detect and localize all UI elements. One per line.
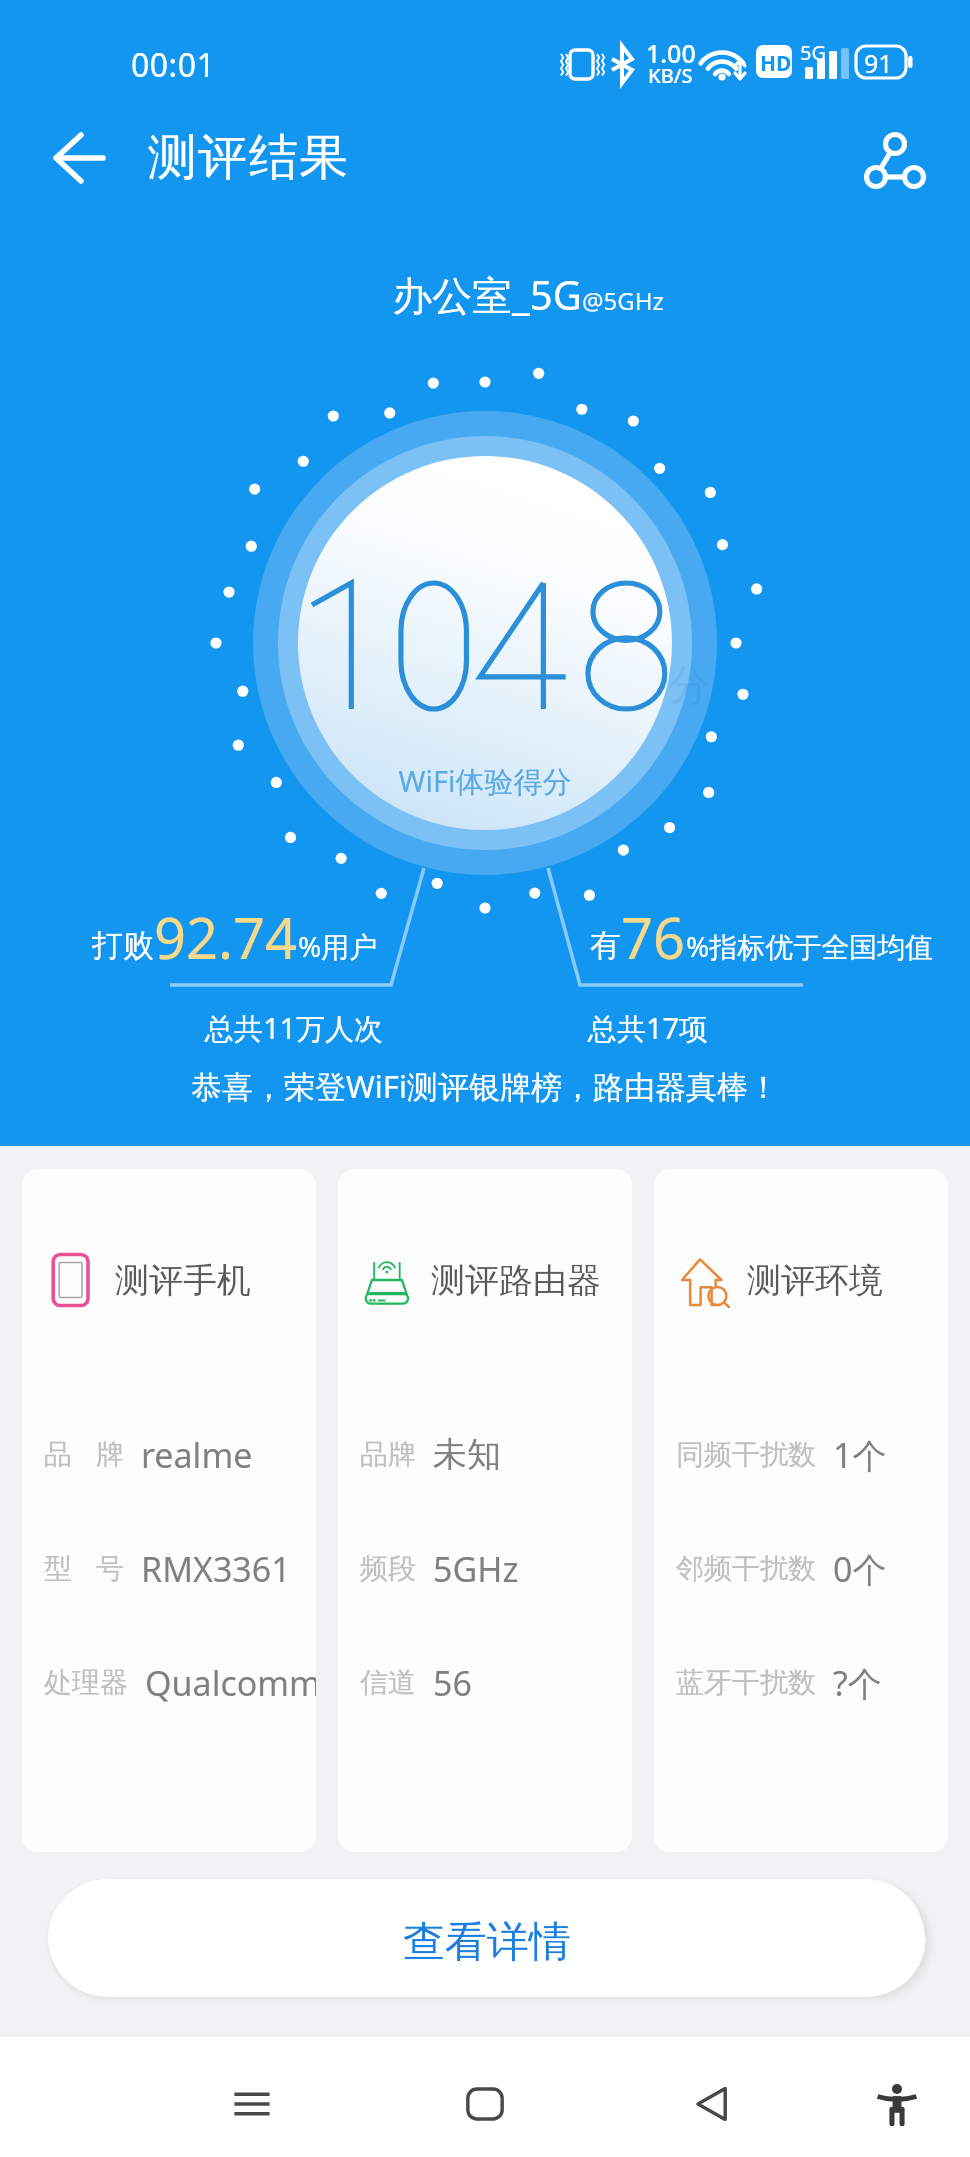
staticText: 蓝牙干扰数	[676, 1665, 816, 1700]
button[interactable]: Back	[664, 2056, 760, 2152]
staticText: 92.74	[154, 899, 298, 975]
staticText: KB/S	[648, 62, 693, 89]
button[interactable]: Home	[437, 2056, 533, 2152]
staticText: 测评环境	[747, 1259, 883, 1302]
button[interactable]: Menu	[204, 2056, 300, 2152]
staticText: 5G	[800, 39, 826, 66]
staticText: 品	[44, 1437, 72, 1472]
staticText: 测评手机	[115, 1259, 251, 1302]
staticText: 分	[668, 660, 710, 713]
staticText: 牌	[96, 1437, 124, 1472]
staticText: 品牌	[360, 1437, 416, 1472]
staticText: WiFi体验得分	[0, 761, 970, 801]
staticText: 号	[96, 1551, 124, 1586]
staticText: 查看详情	[403, 1916, 571, 1969]
button[interactable]: 查看详情	[48, 1879, 925, 1997]
button[interactable]: 测评手机	[22, 1169, 316, 1852]
staticText: 信道	[360, 1665, 416, 1700]
staticText: 打败	[92, 926, 154, 965]
staticText: 同频干扰数	[676, 1437, 816, 1472]
staticText: 1.00	[646, 36, 696, 70]
button[interactable]: Back	[32, 112, 124, 204]
staticText: ?个	[833, 1660, 882, 1704]
button[interactable]: 测评路由器	[338, 1169, 632, 1852]
staticText: %用户	[298, 927, 378, 965]
staticText: 0个	[833, 1546, 887, 1590]
staticText: 1个	[833, 1432, 887, 1476]
button[interactable]: 测评环境	[654, 1169, 948, 1852]
staticText: %指标优于全国均值	[686, 927, 934, 965]
staticText: 00:01	[131, 43, 216, 87]
staticText: 56	[433, 1660, 472, 1704]
staticText: @5GHz	[582, 284, 664, 317]
button[interactable]: Share	[845, 113, 945, 213]
staticText: 总共11万人次	[94, 1008, 494, 1048]
staticText: RMX3361	[141, 1546, 291, 1590]
staticText: 办公室_5G	[392, 267, 582, 322]
staticText: 型	[44, 1551, 72, 1586]
staticText: 总共17项	[448, 1008, 848, 1048]
staticText: 邻频干扰数	[676, 1551, 816, 1586]
staticText: 频段	[360, 1551, 416, 1586]
staticText: 91	[864, 46, 893, 80]
staticText: 5GHz	[433, 1546, 519, 1590]
staticText: 恭喜，荣登WiFi测评银牌榜，路由器真棒！	[0, 1065, 970, 1107]
staticText: 76	[621, 899, 686, 975]
staticText: Qualcomm	[145, 1660, 316, 1704]
staticText: HD	[760, 49, 792, 78]
staticText: 测评路由器	[431, 1259, 601, 1302]
staticText: realme	[141, 1432, 253, 1476]
staticText: 处理器	[44, 1665, 128, 1700]
staticText: 有	[590, 926, 621, 965]
button[interactable]: Accessibility	[849, 2056, 945, 2152]
staticText: 未知	[433, 1433, 501, 1476]
staticText: 测评结果	[147, 127, 349, 189]
